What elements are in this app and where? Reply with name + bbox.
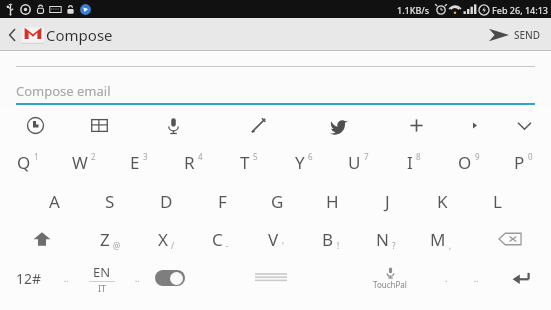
- staticText: @: [113, 240, 121, 251]
- staticText: M: [430, 228, 446, 251]
- button[interactable]: Shift: [0, 220, 83, 258]
- staticText: !: [337, 240, 340, 251]
- button[interactable]: Twitter: [299, 108, 380, 142]
- staticText: ..: [64, 273, 69, 284]
- button[interactable]: O: [441, 142, 496, 182]
- staticText: T: [240, 151, 250, 174]
- staticText: J: [385, 190, 390, 213]
- staticText: H: [326, 190, 339, 213]
- staticText: 1: [34, 151, 39, 162]
- staticText: X: [158, 228, 168, 251]
- staticText: 1.1KB/s: [397, 4, 430, 16]
- staticText: TouchPal: [373, 279, 407, 290]
- button[interactable]: R: [166, 142, 221, 182]
- staticText: N: [376, 228, 389, 251]
- staticText: Feb 26, 14:13: [492, 4, 548, 16]
- button[interactable]: SEND: [479, 24, 551, 46]
- staticText: P: [514, 151, 525, 174]
- button[interactable]: Language layout: [71, 108, 128, 142]
- staticText: O: [458, 151, 472, 174]
- button[interactable]: V: [248, 220, 303, 258]
- staticText: Compose email: [16, 82, 111, 100]
- staticText: 4: [198, 151, 203, 162]
- staticText: Z: [100, 228, 110, 251]
- staticText: A: [49, 190, 60, 213]
- staticText: ..: [474, 273, 479, 284]
- button[interactable]: M: [413, 220, 468, 258]
- staticText: Y: [295, 151, 305, 174]
- staticText: 12#: [16, 269, 42, 288]
- button[interactable]: J: [360, 182, 415, 220]
- button[interactable]: E: [111, 142, 166, 182]
- button[interactable]: Q: [0, 142, 56, 182]
- staticText: IT: [98, 282, 107, 294]
- staticText: 7: [364, 151, 369, 162]
- button[interactable]: B: [303, 220, 358, 258]
- staticText: L: [493, 190, 502, 213]
- button[interactable]: Z: [83, 220, 138, 258]
- staticText: G: [271, 190, 284, 213]
- staticText: V: [268, 228, 279, 251]
- button[interactable]: Backspace: [468, 220, 551, 258]
- button[interactable]: More languages: [128, 258, 147, 298]
- staticText: SEND: [514, 28, 541, 42]
- staticText: /: [171, 240, 174, 251]
- button[interactable]: Switch language: [76, 258, 128, 298]
- button[interactable]: Collapse keyboard: [497, 108, 551, 142]
- button[interactable]: A: [26, 182, 82, 220]
- button[interactable]: Y: [276, 142, 331, 182]
- button[interactable]: F: [194, 182, 250, 220]
- staticText: K: [437, 190, 448, 213]
- button[interactable]: Symbols: [57, 258, 76, 298]
- staticText: Compose: [46, 25, 113, 45]
- button[interactable]: U: [331, 142, 386, 182]
- staticText: R: [184, 151, 195, 174]
- staticText: 6: [308, 151, 313, 162]
- staticText: B: [322, 228, 334, 251]
- staticText: ?: [392, 240, 396, 251]
- button[interactable]: D: [138, 182, 194, 220]
- staticText: 5: [253, 151, 258, 162]
- button[interactable]: I: [386, 142, 441, 182]
- button[interactable]: Enter: [491, 258, 551, 298]
- staticText: U: [348, 151, 361, 174]
- staticText: E: [130, 151, 140, 174]
- button[interactable]: Navigate up, Gmail: [4, 23, 48, 47]
- button[interactable]: Voice input: [128, 108, 218, 142]
- staticText: S: [105, 190, 115, 213]
- button[interactable]: W: [56, 142, 111, 182]
- staticText: -: [226, 240, 229, 251]
- staticText: I: [407, 151, 413, 174]
- button[interactable]: C: [193, 220, 248, 258]
- button[interactable]: P: [496, 142, 551, 182]
- staticText: ..: [135, 273, 140, 284]
- staticText: ': [282, 240, 284, 251]
- staticText: 2: [91, 151, 96, 162]
- button[interactable]: G: [250, 182, 305, 220]
- button[interactable]: H: [305, 182, 360, 220]
- staticText: EN: [93, 263, 111, 281]
- button[interactable]: Space: [192, 258, 349, 298]
- button[interactable]: Toggle: [147, 258, 192, 298]
- button[interactable]: X: [138, 220, 193, 258]
- button[interactable]: Add: [380, 108, 452, 142]
- button[interactable]: T: [221, 142, 276, 182]
- staticText: ,: [449, 240, 452, 251]
- button[interactable]: Draw: [218, 108, 299, 142]
- button[interactable]: Compose email: [16, 77, 535, 105]
- staticText: Q: [17, 151, 31, 174]
- button[interactable]: More: [452, 108, 497, 142]
- button[interactable]: N: [358, 220, 413, 258]
- staticText: F: [218, 190, 227, 213]
- button[interactable]: [16, 55, 535, 67]
- button[interactable]: 12#: [0, 258, 57, 298]
- staticText: 0: [528, 151, 533, 162]
- staticText: D: [160, 190, 173, 213]
- button[interactable]: TouchPal voice: [349, 258, 431, 298]
- button[interactable]: L: [470, 182, 525, 220]
- button[interactable]: Handwriting: [0, 108, 71, 142]
- button[interactable]: K: [415, 182, 470, 220]
- button[interactable]: S: [82, 182, 138, 220]
